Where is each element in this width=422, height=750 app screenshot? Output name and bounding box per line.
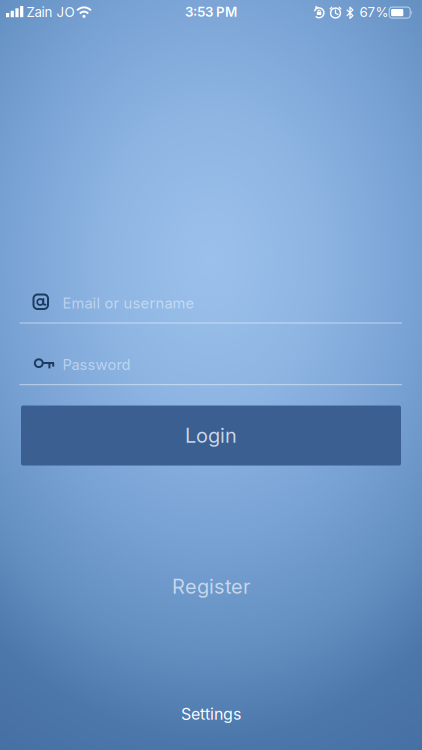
staticText: 67% [359,4,388,20]
button[interactable]: Register [172,575,250,598]
staticText: 3:53 PM [185,4,237,20]
staticText: Register [172,575,250,598]
staticText: Login [185,424,237,447]
button[interactable]: Settings [181,705,241,723]
textField[interactable]: Password [0,0,422,750]
button[interactable]: Login [21,405,401,465]
textField[interactable]: Email or username [0,0,422,750]
staticText: Email or username [62,294,194,312]
staticText: Zain JO [26,4,74,20]
staticText: Password [62,356,130,373]
staticText: Settings [181,705,241,723]
